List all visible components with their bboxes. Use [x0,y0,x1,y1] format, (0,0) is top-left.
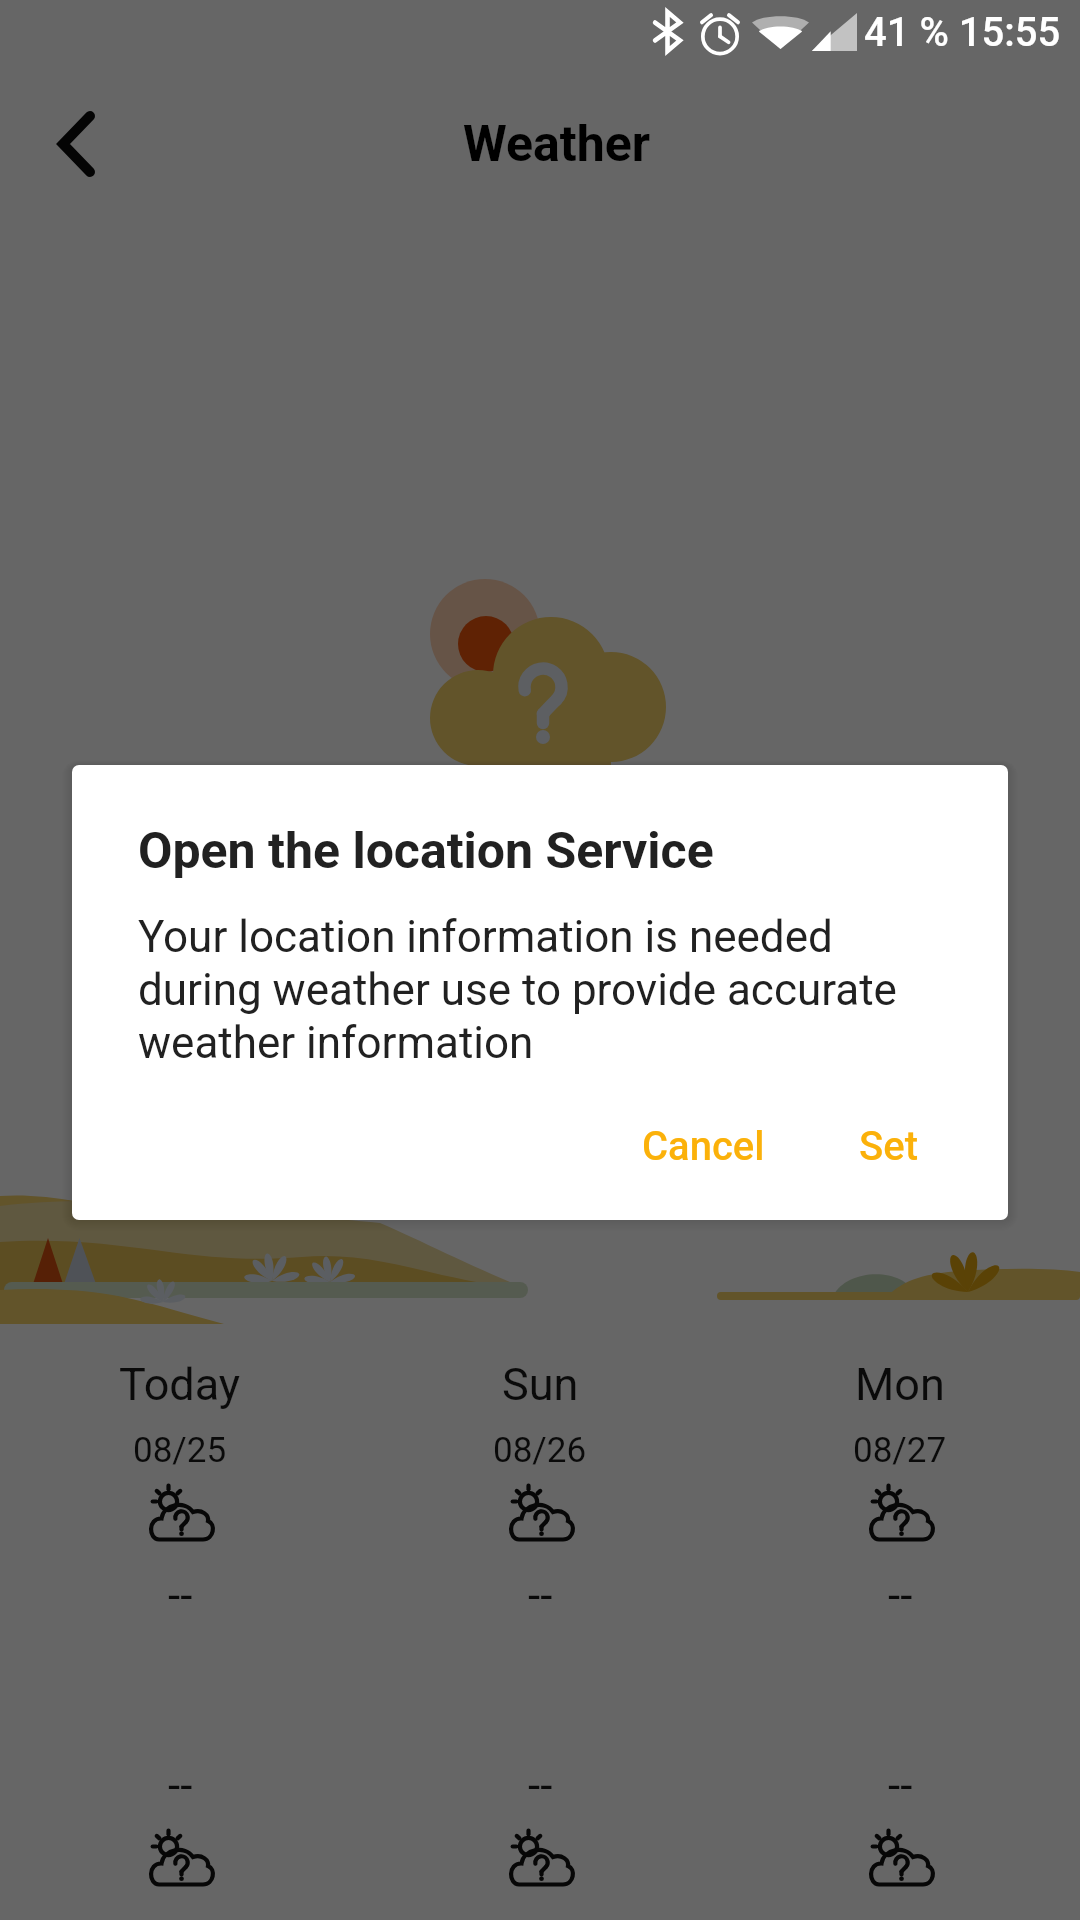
button[interactable]: Today [0,0,360,1920]
staticText: Your location information is needed duri… [138,911,897,1069]
staticText: 08/26 [493,1430,587,1471]
staticText: 41 % 15:55 [864,9,1061,56]
staticText: 08/25 [133,1430,227,1471]
staticText: -- [528,1760,553,1812]
button[interactable]: Mon [720,0,1080,1920]
staticText: Sun [502,1358,579,1411]
button[interactable]: Set [831,1105,946,1188]
staticText: Today [119,1358,241,1411]
staticText: Open the location Service [138,822,714,881]
staticText: Weather [463,115,650,174]
staticText: Mon [855,1358,945,1411]
staticText: -- [168,1570,193,1622]
button[interactable]: Sun [360,0,720,1920]
staticText: -- [168,1760,193,1812]
staticText: Set [859,1123,918,1170]
staticText: -- [888,1570,913,1622]
staticText: -- [528,1570,553,1622]
button[interactable]: Back [0,79,150,209]
staticText: Cancel [642,1123,765,1170]
staticText: 08/27 [853,1430,947,1471]
staticText: -- [888,1760,913,1812]
button[interactable]: Cancel [614,1105,793,1188]
